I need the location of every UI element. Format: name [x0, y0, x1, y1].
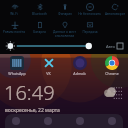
button[interactable]: Авто: [105, 43, 124, 49]
button[interactable]: Погода: [101, 82, 123, 104]
button[interactable]: Приложение: [5, 114, 123, 128]
button[interactable]: Фонарик: [52, 1, 77, 17]
staticText: Автоповорот: [105, 12, 125, 16]
staticText: Батарея: [33, 30, 46, 34]
staticText: Не беспокоить: [78, 12, 101, 16]
staticText: воскресенье, 22 марта: [5, 107, 60, 114]
button[interactable]: Батарея: [27, 19, 52, 35]
button[interactable]: Передача: [77, 19, 102, 35]
button[interactable]: Wi-Fi: [1, 1, 27, 17]
button[interactable]: WhatsApp: [3, 56, 30, 76]
staticText: 16:49: [4, 79, 55, 106]
button[interactable]: Приложение: [44, 117, 52, 125]
staticText: WhatsApp: [8, 71, 26, 76]
staticText: Авто: [106, 44, 115, 49]
staticText: VK: [46, 71, 51, 76]
staticText: Chrome: [105, 71, 119, 76]
button[interactable]: 16:49: [4, 79, 101, 106]
button[interactable]: Bluetooth: [27, 1, 52, 17]
staticText: Wi-Fi: [10, 12, 18, 16]
staticText: Bluetooth: [32, 12, 47, 16]
staticText: Данные о местоположении: [53, 30, 76, 38]
staticText: Фонарик: [58, 12, 72, 16]
button[interactable]: VK: [35, 56, 62, 76]
staticText: Admob: [73, 71, 86, 76]
button[interactable]: Яркость: [4, 40, 102, 52]
button[interactable]: Приложение: [76, 117, 84, 125]
button[interactable]: Chrome: [98, 56, 125, 76]
staticText: Передача: [82, 30, 98, 34]
button[interactable]: Данные о местоположении: [52, 19, 77, 39]
button[interactable]: Приложение: [12, 117, 20, 125]
button[interactable]: Admob: [66, 56, 93, 76]
button[interactable]: Режим полёта: [1, 19, 27, 35]
staticText: Режим полёта: [3, 30, 25, 34]
button[interactable]: Не беспокоить: [77, 1, 102, 17]
button[interactable]: Автоповорот: [102, 1, 127, 17]
button[interactable]: Приложение: [108, 117, 116, 125]
